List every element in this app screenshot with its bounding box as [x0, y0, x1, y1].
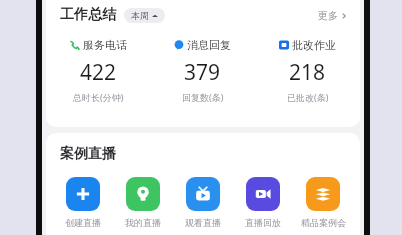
staticText: 工作总结 [60, 6, 116, 24]
button[interactable]: 批改作业 [255, 38, 360, 103]
button[interactable]: 更多 [318, 9, 348, 22]
button[interactable]: 消息回复 [150, 38, 255, 103]
staticText: 本周 [131, 10, 149, 21]
staticText: 创建直播 [65, 217, 101, 228]
staticText: 218 [289, 58, 326, 87]
staticText: 已批改(条) [287, 91, 329, 103]
staticText: 直播回放 [245, 217, 281, 228]
staticText: 422 [80, 58, 117, 87]
staticText: 更多 [318, 9, 338, 22]
staticText: 总时长(分钟) [73, 91, 124, 103]
other: 消息回复 [174, 40, 184, 50]
staticText: 我的直播 [125, 217, 161, 228]
staticText: 批改作业 [292, 38, 336, 52]
button[interactable]: 创建直播 [54, 177, 112, 228]
staticText: 服务电话 [83, 38, 127, 52]
button[interactable]: 本周 [124, 8, 165, 23]
staticText: 精品案例会 [301, 217, 346, 228]
button[interactable]: 直播回放 [234, 177, 292, 228]
other: 批改作业 [279, 40, 289, 50]
staticText: 379 [184, 58, 221, 87]
button[interactable]: 服务电话 [46, 38, 150, 103]
button[interactable]: 观看直播 [174, 177, 232, 228]
other: 服务电话 [69, 40, 80, 51]
staticText: 回复数(条) [182, 91, 224, 103]
button[interactable]: 精品案例会 [294, 177, 352, 228]
button[interactable]: 我的直播 [114, 177, 172, 228]
staticText: 观看直播 [185, 217, 221, 228]
staticText: 消息回复 [187, 38, 231, 52]
staticText: 案例直播 [60, 145, 116, 163]
